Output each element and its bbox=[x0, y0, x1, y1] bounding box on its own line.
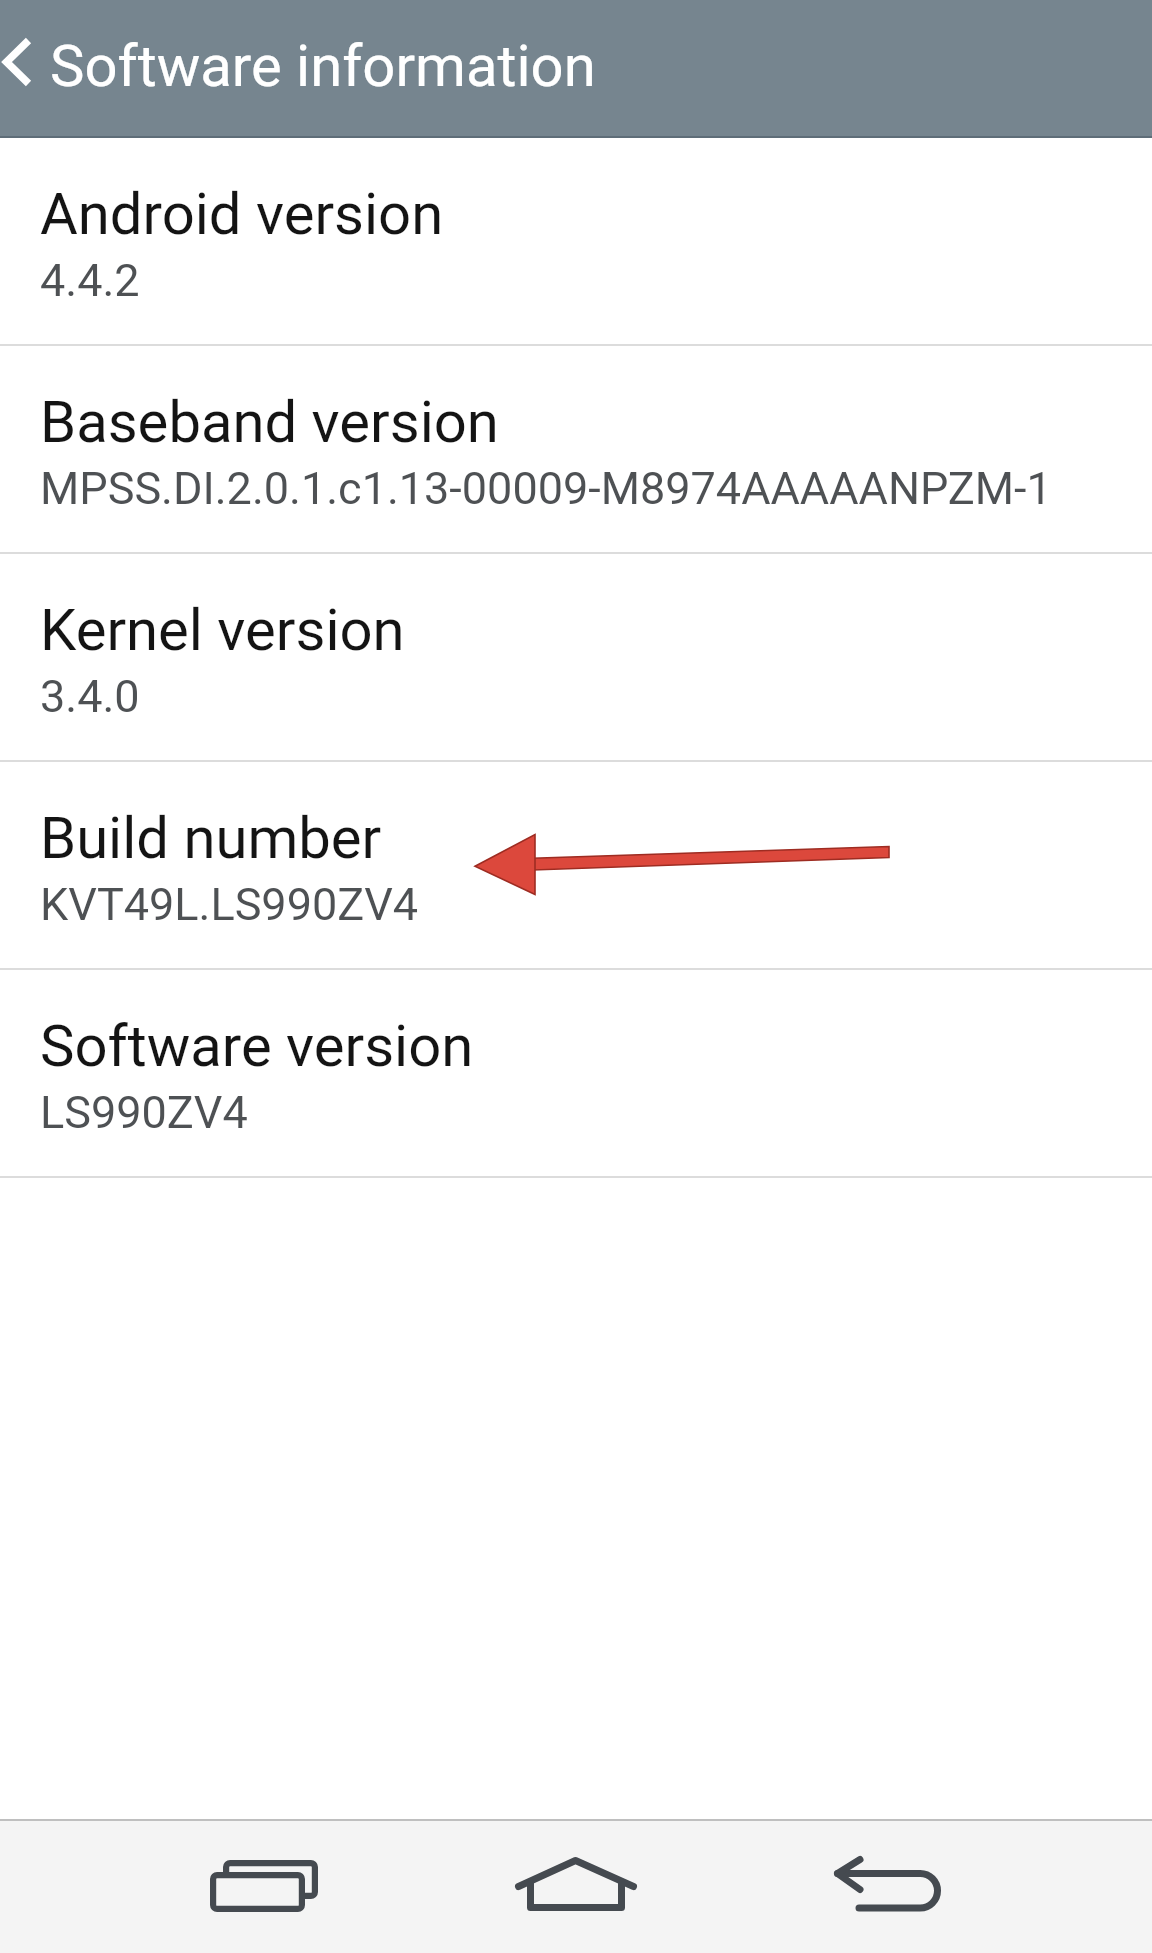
staticText: Software version bbox=[40, 1012, 474, 1080]
staticText: Android version bbox=[40, 180, 444, 248]
button[interactable]: Baseband version bbox=[0, 346, 1152, 554]
staticText: 3.4.0 bbox=[40, 670, 140, 723]
staticText: Kernel version bbox=[40, 596, 405, 664]
staticText: 4.4.2 bbox=[40, 254, 140, 307]
staticText: Build number bbox=[40, 804, 382, 872]
staticText: Software information bbox=[50, 32, 596, 100]
staticText: Baseband version bbox=[40, 388, 499, 456]
button[interactable]: Back bbox=[0, 0, 46, 138]
staticText: LS990ZV4 bbox=[40, 1086, 248, 1139]
staticText: MPSS.DI.2.0.1.c1.13-00009-M8974AAAAANPZM… bbox=[40, 462, 1052, 515]
staticText: KVT49L.LS990ZV4 bbox=[40, 878, 419, 931]
button[interactable]: Software version bbox=[0, 970, 1152, 1178]
button[interactable]: Kernel version bbox=[0, 554, 1152, 762]
button[interactable]: Build number bbox=[0, 762, 1152, 970]
button[interactable]: Home bbox=[456, 1821, 696, 1953]
button[interactable]: Android version bbox=[0, 138, 1152, 346]
button[interactable]: Back bbox=[767, 1821, 1007, 1953]
button[interactable]: Recent apps bbox=[144, 1821, 384, 1953]
